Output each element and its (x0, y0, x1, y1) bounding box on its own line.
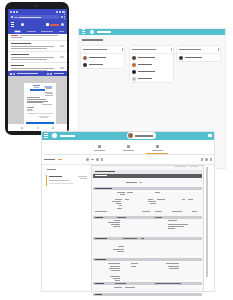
button[interactable] (128, 133, 153, 138)
button[interactable] (80, 45, 125, 69)
button[interactable]: Settings (208, 134, 212, 137)
button[interactable]: Menu (82, 29, 85, 34)
button[interactable] (129, 45, 174, 83)
button[interactable] (41, 175, 90, 186)
button[interactable] (8, 63, 67, 74)
button[interactable] (117, 145, 139, 154)
button[interactable]: Recents (52, 127, 54, 129)
button[interactable] (176, 45, 221, 62)
button[interactable] (8, 52, 67, 63)
button[interactable]: Back (21, 127, 23, 129)
button[interactable]: Menu (44, 133, 48, 138)
button[interactable] (88, 145, 110, 154)
button[interactable] (8, 41, 67, 52)
button[interactable] (146, 145, 168, 154)
button[interactable] (26, 122, 54, 125)
